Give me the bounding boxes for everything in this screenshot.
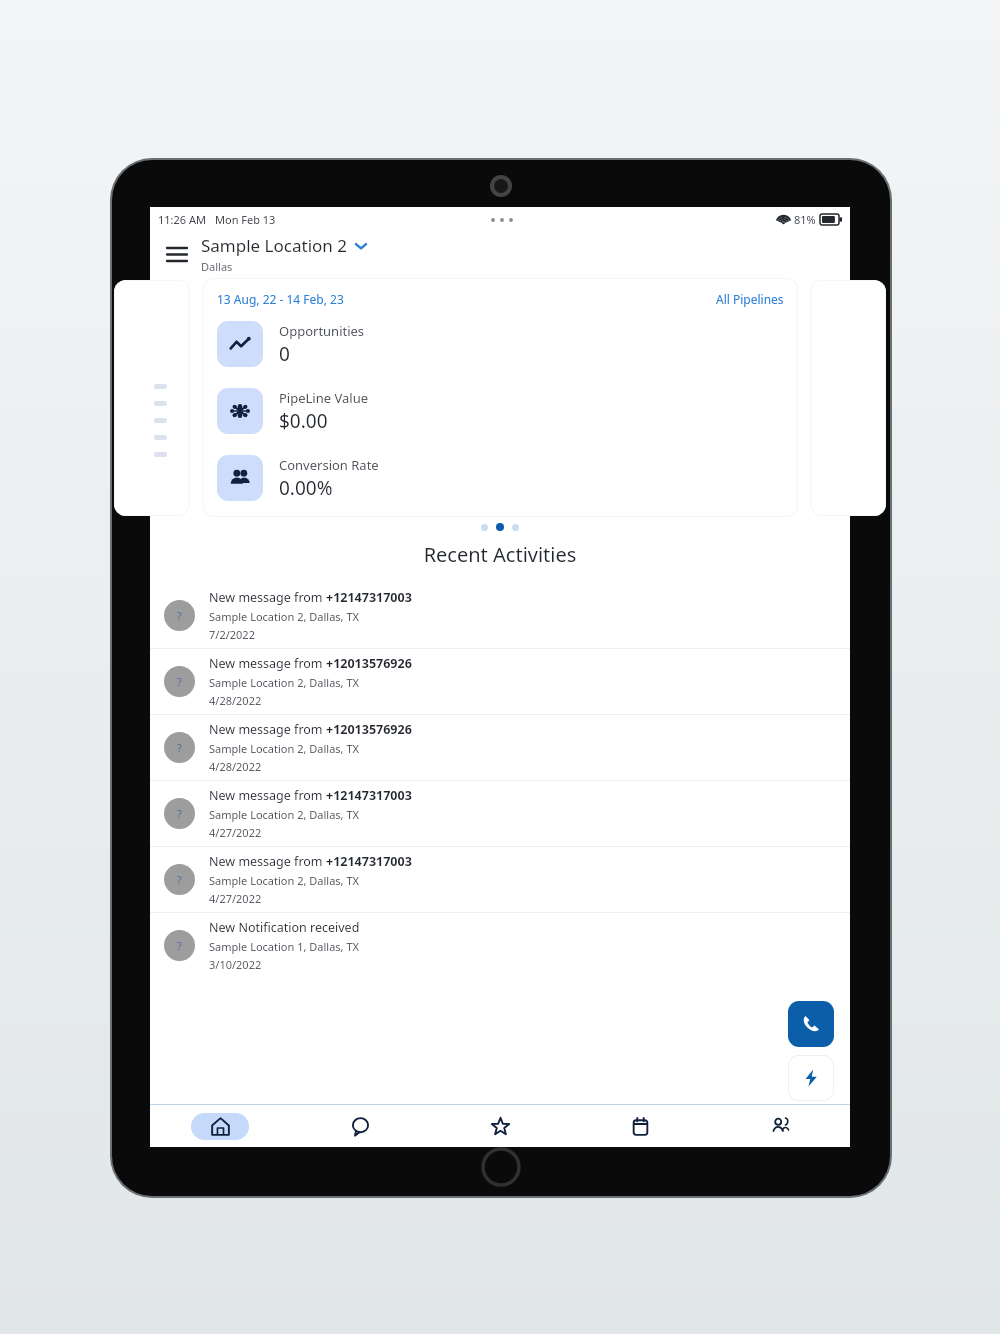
button[interactable] [114,280,190,516]
staticText: +12147317003 [326,853,412,870]
button[interactable]: Opportunities [217,321,365,367]
staticText: New message from [209,589,326,606]
staticText: +12013576926 [326,655,412,672]
staticText: ? [177,608,182,623]
button[interactable]: Open navigation menu [159,236,194,271]
staticText: +12147317003 [326,787,412,804]
staticText: 81% [794,212,816,227]
staticText: New message from [209,721,326,738]
staticText: ? [177,674,182,689]
button[interactable]: ? [150,847,850,912]
staticText: ? [177,938,182,953]
staticText: 13 Aug, 22 - 14 Feb, 23 [217,291,344,307]
button[interactable]: Calendar [570,1105,710,1147]
staticText: +12013576926 [326,721,412,738]
button[interactable]: ? [150,913,850,978]
staticText: ? [177,806,182,821]
staticText: Sample Location 2 [201,234,347,257]
staticText: 0.00% [279,475,333,501]
button[interactable]: ? [150,715,850,780]
button[interactable]: 13 Aug, 22 - 14 Feb, 23 [203,278,798,517]
staticText: New message from [209,787,326,804]
staticText: Sample Location 1, Dallas, TX [209,939,359,954]
button[interactable]: Call [788,1001,834,1047]
button[interactable]: Opportunities [430,1105,570,1147]
staticText: Recent Activities [150,541,850,568]
staticText: Sample Location 2, Dallas, TX [209,675,359,690]
button[interactable]: Change location [353,238,368,253]
button[interactable] [481,524,488,531]
button[interactable] [512,524,519,531]
staticText: Dallas [201,259,233,274]
staticText: Sample Location 2, Dallas, TX [209,741,359,756]
staticText: Sample Location 2, Dallas, TX [209,807,359,822]
button[interactable]: 13 Aug, 22 - 14 Feb, 23 [217,291,344,307]
staticText: +12147317003 [326,589,412,606]
staticText: 0 [279,341,290,367]
staticText: New Notification received [209,919,360,936]
staticText: 11:26 AM [158,212,206,227]
staticText: ? [177,740,182,755]
staticText: 3/10/2022 [209,957,262,972]
button[interactable]: ? [150,649,850,714]
staticText: 7/2/2022 [209,627,255,642]
button[interactable]: Conversations [290,1105,430,1147]
staticText: 4/27/2022 [209,825,262,840]
button[interactable]: PipeLine Value [217,388,369,434]
staticText: Conversion Rate [279,456,379,474]
staticText: 4/27/2022 [209,891,262,906]
staticText: ? [177,872,182,887]
staticText: Mon Feb 13 [215,212,276,227]
button[interactable] [496,523,504,531]
staticText: New message from [209,853,326,870]
button[interactable]: ? [150,781,850,846]
staticText: New message from [209,655,326,672]
button[interactable]: All Pipelines [716,291,784,307]
staticText: PipeLine Value [279,389,369,407]
button[interactable]: Contacts [710,1105,850,1147]
button[interactable]: Conversion Rate [217,455,379,501]
staticText: Sample Location 2, Dallas, TX [209,873,359,888]
staticText: Opportunities [279,322,365,340]
button[interactable]: ? [150,583,850,648]
staticText: Sample Location 2, Dallas, TX [209,609,359,624]
button[interactable] [810,280,886,516]
button[interactable]: Home [150,1105,290,1147]
staticText: 4/28/2022 [209,693,262,708]
staticText: $0.00 [279,408,328,434]
staticText: All Pipelines [716,291,784,307]
staticText: 4/28/2022 [209,759,262,774]
button[interactable]: Quick actions [788,1055,834,1101]
